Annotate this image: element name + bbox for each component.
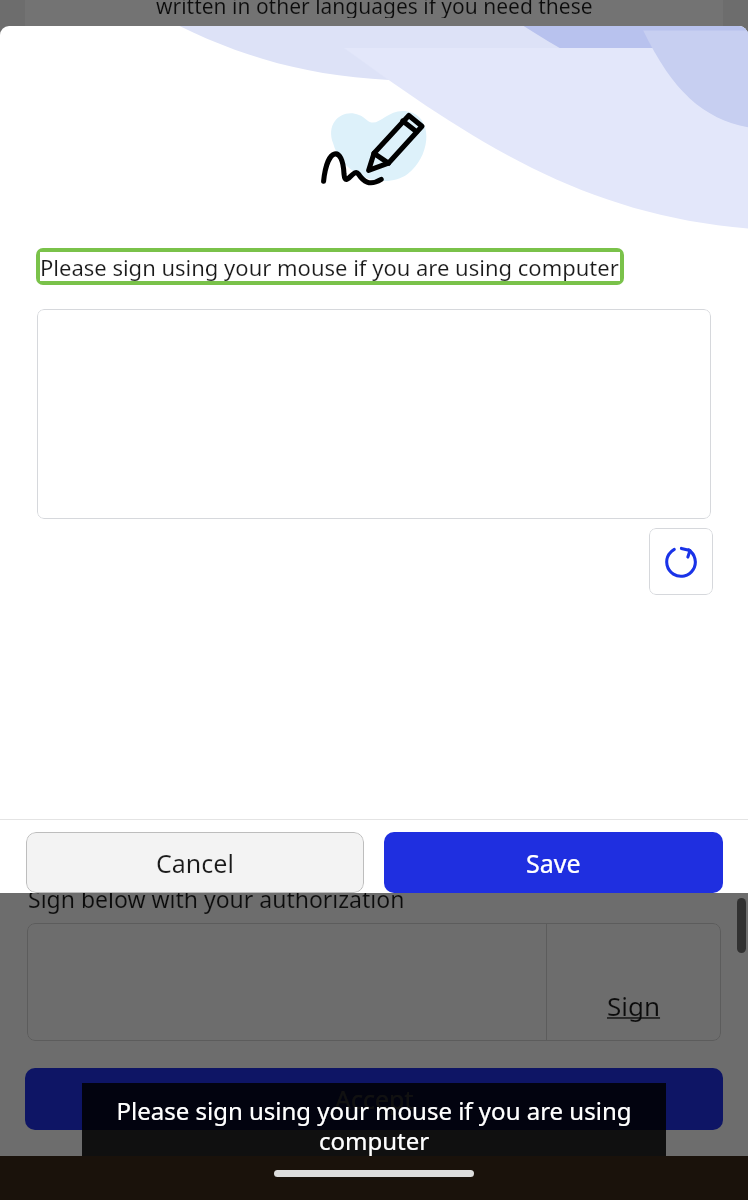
button[interactable]: Sign (547, 923, 721, 1041)
button[interactable]: Save (384, 832, 723, 893)
staticText: Please sign using your mouse if you are … (40, 252, 619, 281)
button[interactable]: Accept (25, 1068, 723, 1130)
staticText: Sign below with your authorization (28, 883, 405, 914)
button[interactable]: Reset signature (649, 528, 713, 595)
button[interactable] (37, 309, 711, 519)
staticText: Please sign using your mouse if you are … (100, 1094, 648, 1157)
button[interactable]: Please sign using your mouse if you are … (40, 252, 620, 281)
staticText: Save (526, 846, 581, 880)
staticText: Accept (335, 1082, 414, 1116)
staticText: Cancel (156, 846, 234, 880)
staticText: written in other languages if you need t… (156, 0, 593, 18)
button[interactable]: Cancel (26, 832, 364, 893)
staticText: Sign (607, 988, 661, 1023)
